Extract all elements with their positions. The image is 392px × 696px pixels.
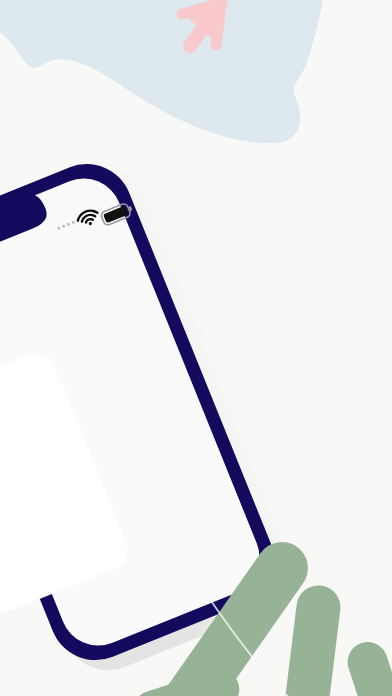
- button[interactable]: Onboarding illustration: [0, 0, 392, 696]
